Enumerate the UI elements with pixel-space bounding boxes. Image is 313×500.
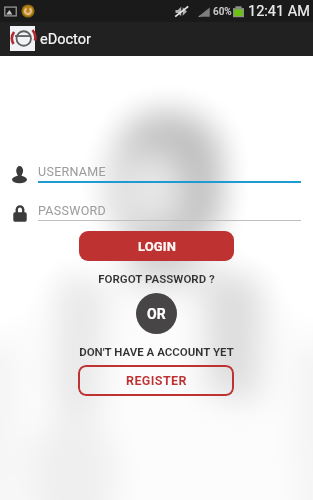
staticText: DON'T HAVE A ACCOUNT YET: [79, 345, 234, 358]
button[interactable]: USERNAME: [11, 164, 301, 185]
staticText: FORGOT PASSWORD ?: [98, 272, 215, 285]
button[interactable]: LOGIN: [79, 231, 234, 261]
staticText: 60%: [213, 6, 232, 18]
staticText: PASSWORD: [38, 203, 107, 218]
staticText: OR: [147, 306, 166, 322]
button[interactable]: FORGOT PASSWORD ?: [0, 270, 313, 286]
staticText: REGISTER: [126, 373, 187, 388]
staticText: USERNAME: [38, 164, 106, 179]
button[interactable]: OR: [136, 293, 177, 334]
button[interactable]: PASSWORD: [11, 203, 301, 224]
staticText: LOGIN: [138, 239, 176, 254]
staticText: 12:41 AM: [248, 3, 310, 20]
staticText: eDoctor: [40, 31, 91, 48]
button[interactable]: REGISTER: [78, 365, 234, 396]
